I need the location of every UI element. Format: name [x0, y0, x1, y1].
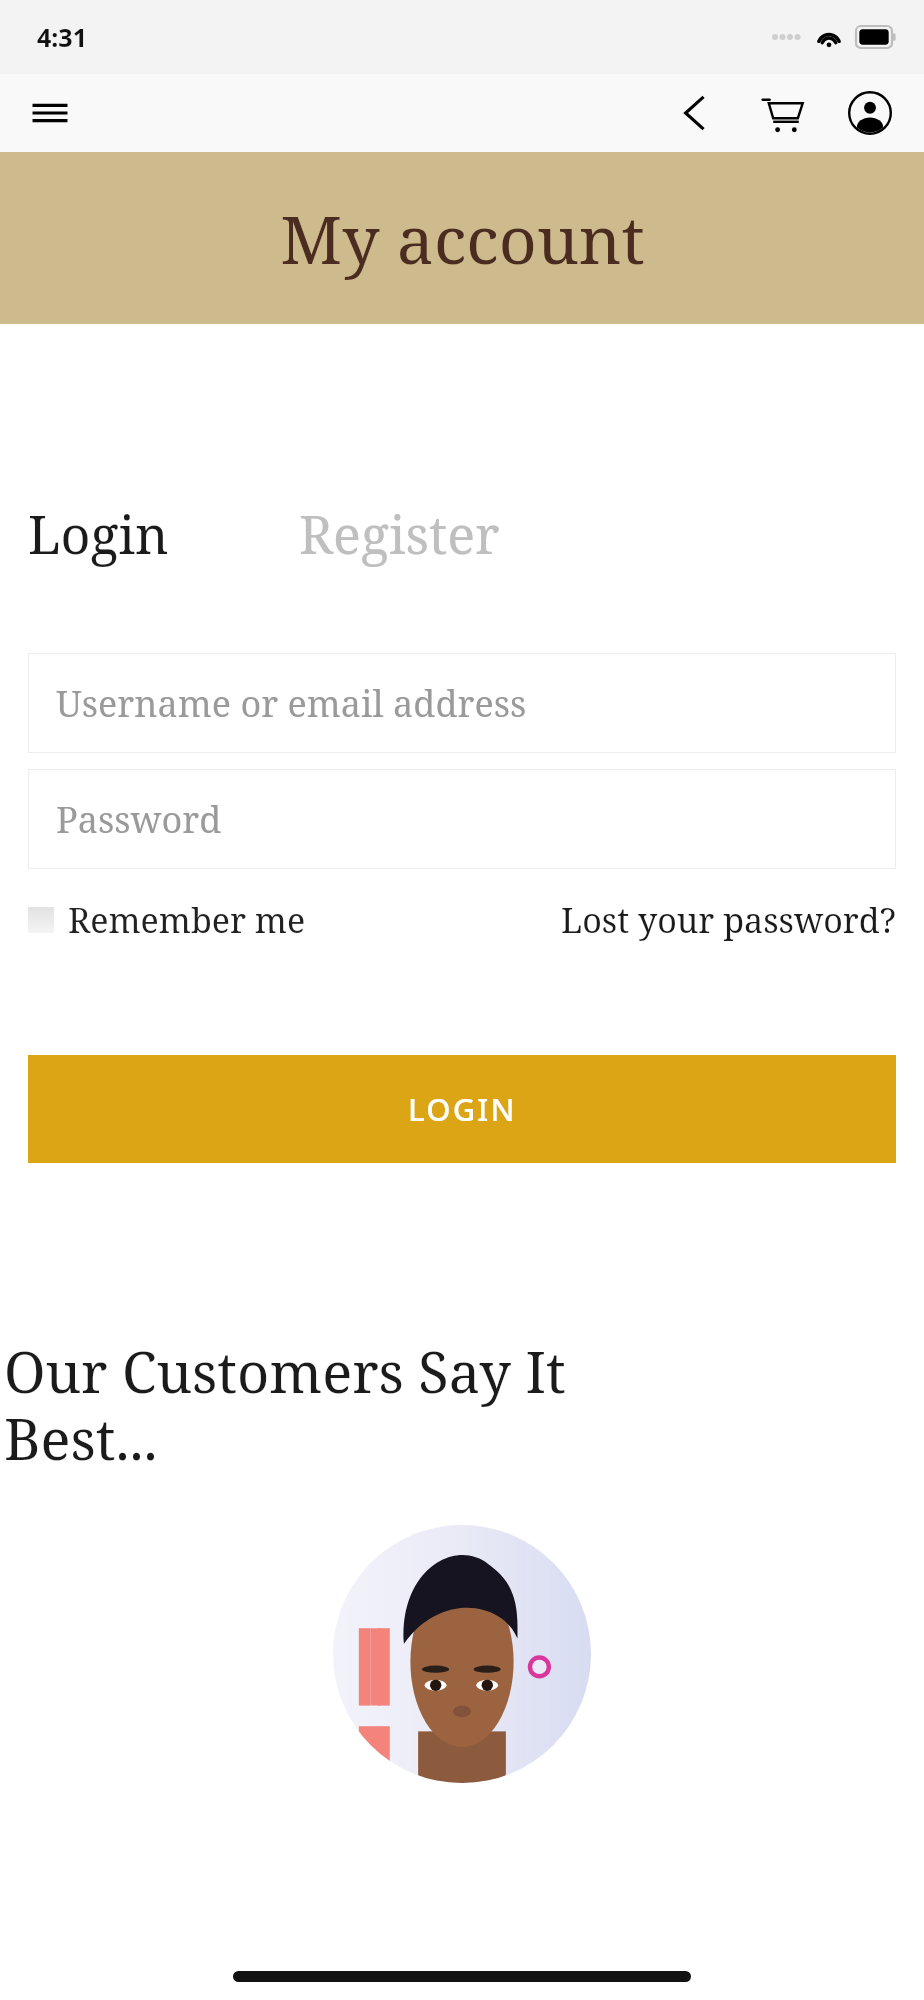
button[interactable]: Login — [28, 498, 169, 569]
button[interactable]: Remember me — [28, 897, 306, 943]
staticText: Remember me — [68, 897, 306, 943]
staticText: Register — [299, 498, 500, 569]
staticText: Our Customers Say It Best... — [4, 1333, 684, 1477]
staticText: Login — [28, 498, 169, 569]
staticText: 4:31 — [37, 20, 87, 54]
button[interactable]: Lost your password? — [561, 897, 896, 943]
button[interactable]: Account — [838, 81, 902, 145]
button[interactable]: Username or email address — [28, 653, 896, 753]
button[interactable]: Back — [662, 81, 726, 145]
staticText: Username or email address — [56, 679, 527, 728]
button[interactable]: Cart — [750, 81, 814, 145]
staticText: My account — [280, 193, 645, 283]
staticText: LOGIN — [408, 1088, 517, 1130]
button[interactable]: Password — [28, 769, 896, 869]
staticText: Password — [56, 795, 222, 844]
button[interactable]: Register — [299, 498, 500, 569]
button[interactable]: LOGIN — [28, 1055, 896, 1163]
staticText: Lost your password? — [561, 897, 896, 943]
button[interactable]: Menu — [22, 85, 78, 141]
